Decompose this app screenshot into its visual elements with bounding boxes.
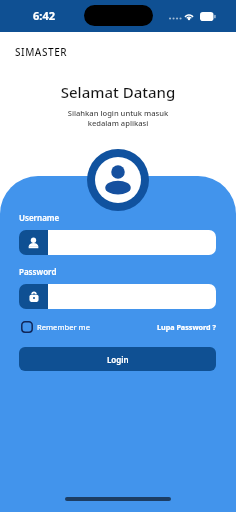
staticText: 6:42 bbox=[33, 8, 55, 23]
staticText: Login bbox=[107, 354, 129, 365]
button[interactable] bbox=[48, 284, 216, 309]
other: Password bbox=[19, 284, 48, 309]
button[interactable] bbox=[48, 230, 216, 255]
button[interactable]: Remember me bbox=[19, 321, 90, 333]
staticText: Username bbox=[19, 212, 60, 223]
button[interactable]: Login bbox=[19, 347, 216, 371]
staticText: Selamat Datang bbox=[0, 82, 236, 102]
staticText: Remember me bbox=[37, 322, 90, 332]
staticText: Silahkan login untuk masuk kedalam aplik… bbox=[0, 108, 236, 128]
staticText: SIMASTER bbox=[15, 45, 68, 59]
button[interactable]: Lupa Password ? bbox=[157, 322, 216, 332]
staticText: Password bbox=[19, 266, 57, 277]
staticText: Lupa Password ? bbox=[157, 322, 216, 332]
other: Username bbox=[19, 230, 48, 255]
